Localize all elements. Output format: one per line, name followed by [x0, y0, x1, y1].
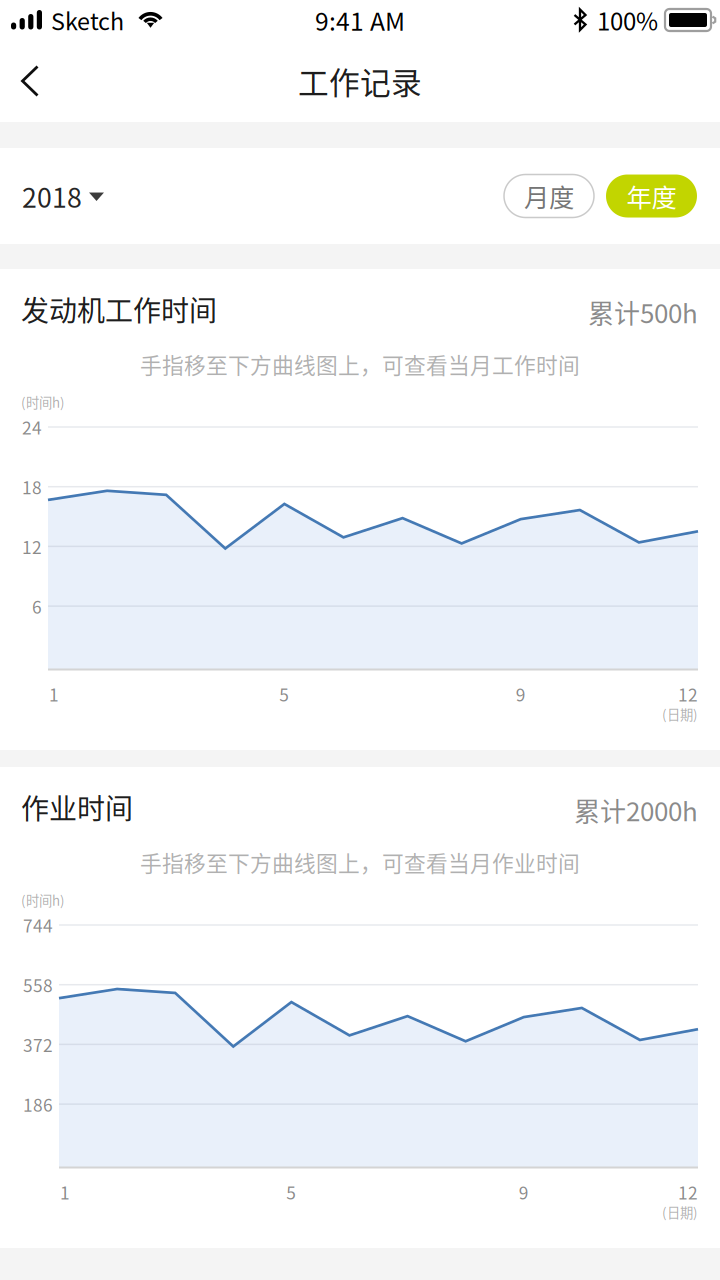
staticText: 6 — [32, 594, 42, 619]
staticText: 9 — [519, 1179, 529, 1205]
staticText: 12 — [678, 681, 698, 707]
staticText: 年度 — [626, 178, 676, 214]
staticText: 9 — [516, 681, 526, 707]
staticText: 累计500h — [588, 293, 698, 331]
staticText: 工作记录 — [298, 59, 422, 103]
staticText: 24 — [22, 414, 42, 440]
staticText: 372 — [23, 1032, 53, 1057]
staticText: 9:41 AM — [315, 2, 405, 38]
staticText: 12 — [678, 1179, 698, 1205]
button[interactable]: 2018 — [22, 155, 120, 237]
staticText: 744 — [23, 912, 53, 938]
staticText: 手指移至下方曲线图上，可查看当月工作时间 — [140, 348, 580, 380]
staticText: 5 — [286, 1179, 296, 1205]
staticText: 2018 — [22, 177, 82, 215]
staticText: 作业时间 — [21, 787, 133, 827]
staticText: 558 — [23, 972, 53, 997]
staticText: 186 — [23, 1092, 53, 1117]
staticText: 发动机工作时间 — [21, 289, 217, 329]
staticText: 5 — [279, 681, 289, 707]
button[interactable]: Back — [0, 40, 65, 122]
staticText: 1 — [60, 1179, 70, 1205]
staticText: (时间h) — [21, 890, 65, 910]
staticText: 1 — [49, 681, 59, 707]
staticText: 100% — [597, 3, 658, 37]
staticText: (日期) — [662, 1202, 698, 1222]
button[interactable]: 年度 — [606, 174, 697, 217]
staticText: Sketch — [51, 3, 124, 37]
staticText: 累计2000h — [574, 791, 698, 829]
staticText: (时间h) — [21, 392, 65, 412]
button[interactable]: 月度 — [504, 174, 594, 217]
staticText: 月度 — [524, 178, 574, 214]
staticText: 12 — [22, 534, 42, 559]
staticText: 18 — [22, 474, 42, 499]
staticText: 手指移至下方曲线图上，可查看当月作业时间 — [140, 846, 580, 878]
staticText: (日期) — [662, 704, 698, 724]
